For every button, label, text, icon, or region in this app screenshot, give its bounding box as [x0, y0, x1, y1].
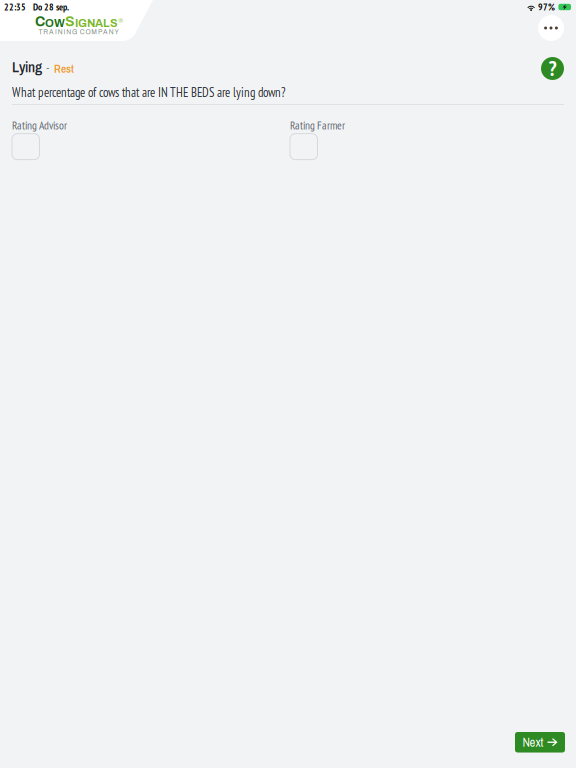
staticText: Rating Farmer: [290, 118, 345, 133]
staticText: S: [65, 14, 75, 29]
staticText: OW: [45, 17, 65, 29]
staticText: Next: [522, 734, 543, 751]
staticText: 97%: [538, 1, 555, 13]
staticText: ®: [118, 18, 123, 24]
staticText: Do 28 sep.: [33, 1, 69, 13]
staticText: C: [35, 14, 45, 29]
staticText: -: [46, 60, 49, 75]
staticText: TRAINING COMPANY: [38, 28, 118, 36]
staticText: Rest: [54, 61, 74, 76]
button[interactable]: Next: [515, 732, 565, 752]
button[interactable]: Help: [541, 57, 564, 80]
staticText: What percentage of cows that are IN THE …: [12, 84, 286, 100]
staticText: ?: [548, 54, 556, 82]
staticText: Rating Advisor: [12, 118, 67, 133]
button[interactable]: More options: [538, 15, 564, 41]
staticText: IGNALS: [75, 17, 118, 29]
staticText: 22:35: [4, 1, 26, 13]
staticText: Lying: [12, 57, 42, 77]
